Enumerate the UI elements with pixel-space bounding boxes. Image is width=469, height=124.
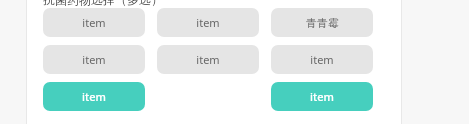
staticText: item bbox=[196, 15, 220, 30]
staticText: item bbox=[196, 52, 220, 67]
button[interactable]: item bbox=[43, 82, 145, 111]
staticText: item bbox=[82, 89, 106, 104]
button[interactable]: item bbox=[157, 8, 259, 37]
button[interactable]: 青青霉 bbox=[271, 8, 373, 37]
button[interactable]: item bbox=[157, 45, 259, 74]
staticText: item bbox=[310, 89, 334, 104]
staticText: item bbox=[82, 52, 106, 67]
staticText: 抗菌药物选择（多选） bbox=[43, 0, 163, 7]
staticText: item bbox=[310, 52, 334, 67]
button[interactable]: item bbox=[271, 82, 373, 111]
button[interactable]: item bbox=[271, 45, 373, 74]
staticText: item bbox=[82, 15, 106, 30]
button[interactable]: item bbox=[43, 8, 145, 37]
staticText: 青青霉 bbox=[306, 16, 339, 30]
button[interactable]: item bbox=[43, 45, 145, 74]
